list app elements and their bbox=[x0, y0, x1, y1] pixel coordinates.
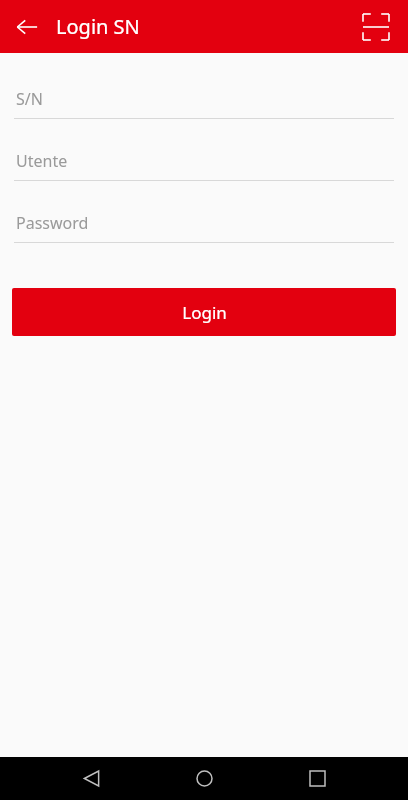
button[interactable]: Back bbox=[69, 757, 113, 800]
staticText: Utente bbox=[16, 150, 68, 172]
button[interactable]: Login bbox=[12, 288, 396, 336]
button[interactable]: Scan barcode bbox=[356, 7, 396, 47]
staticText: Password bbox=[16, 212, 89, 234]
button[interactable]: Utente bbox=[0, 148, 408, 181]
staticText: Login bbox=[182, 301, 227, 324]
button[interactable]: Home bbox=[182, 757, 226, 800]
staticText: Login SN bbox=[56, 13, 140, 40]
staticText: S/N bbox=[16, 88, 43, 110]
button[interactable]: Recent apps bbox=[295, 757, 339, 800]
button[interactable]: Back bbox=[12, 12, 42, 42]
button[interactable]: Password bbox=[0, 210, 408, 243]
button[interactable]: S/N bbox=[0, 86, 408, 119]
